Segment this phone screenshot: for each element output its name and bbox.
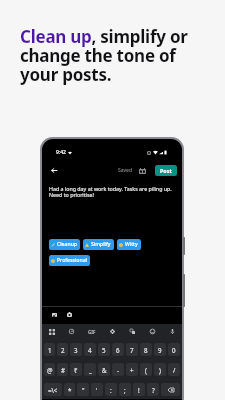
staticText: : xyxy=(110,386,112,394)
button[interactable]: 6 xyxy=(112,343,124,356)
button[interactable]: 5 xyxy=(98,343,110,356)
staticText: ! xyxy=(138,386,140,394)
button[interactable]: 2 xyxy=(57,343,68,356)
button[interactable]: ' xyxy=(91,383,103,396)
staticText: 5 xyxy=(102,346,106,354)
staticText: ; xyxy=(124,386,126,394)
button[interactable]: Keyboard tool 1 xyxy=(67,327,76,336)
staticText: ? xyxy=(152,386,155,394)
staticText: Had a long day at work today. Tasks are … xyxy=(49,185,172,198)
button[interactable]: ) xyxy=(154,363,166,376)
staticText: - xyxy=(117,366,119,374)
staticText: ₹ xyxy=(74,366,78,374)
button[interactable]: _ xyxy=(84,363,96,376)
button[interactable]: Keyboard tool 5 xyxy=(148,327,157,336)
button[interactable]: ₹ xyxy=(70,363,82,376)
button[interactable]: ; xyxy=(119,383,131,396)
staticText: & xyxy=(102,366,107,374)
button[interactable]: * xyxy=(64,383,75,396)
staticText: 7 xyxy=(130,346,134,354)
button[interactable]: Add image xyxy=(50,310,59,319)
staticText: 2 xyxy=(61,346,65,354)
staticText: Post xyxy=(160,167,172,174)
staticText: 9:42 xyxy=(56,149,66,156)
button[interactable]: ! xyxy=(133,383,145,396)
staticText: 8 xyxy=(144,346,148,354)
staticText: 6 xyxy=(116,346,120,354)
button[interactable]: 9 xyxy=(154,343,166,356)
staticText: GIF xyxy=(88,329,96,335)
staticText: " xyxy=(82,386,85,394)
staticText: 9 xyxy=(158,346,162,354)
staticText: Cleanup xyxy=(57,241,77,248)
button[interactable]: 3 xyxy=(70,343,82,356)
button[interactable]: Cleanup xyxy=(49,239,80,250)
button[interactable] xyxy=(161,383,180,396)
button[interactable]: Keyboard tool 2 xyxy=(87,327,96,336)
staticText: / xyxy=(173,366,176,374)
button[interactable]: @ xyxy=(44,363,55,376)
button[interactable]: Back xyxy=(48,164,60,176)
button[interactable]: / xyxy=(168,363,180,376)
button[interactable]: : xyxy=(105,383,117,396)
button[interactable]: 4 xyxy=(84,343,96,356)
staticText: _ xyxy=(89,366,92,374)
button[interactable]: ? xyxy=(147,383,159,396)
button[interactable]: Professional xyxy=(49,255,90,266)
staticText: # xyxy=(61,366,65,374)
staticText: Witty xyxy=(125,241,138,248)
button[interactable]: Post xyxy=(155,165,177,176)
staticText: + xyxy=(130,366,134,374)
button[interactable]: 7 xyxy=(126,343,138,356)
staticText: Clean up, simplify or change the tone of… xyxy=(20,25,188,86)
button[interactable]: Schedule xyxy=(137,165,148,176)
staticText: 0 xyxy=(172,346,176,354)
button[interactable]: ( xyxy=(140,363,152,376)
button[interactable]: " xyxy=(77,383,89,396)
staticText: * xyxy=(68,386,72,394)
button[interactable]: Simplify xyxy=(83,239,114,250)
staticText: @ xyxy=(47,366,53,374)
button[interactable]: Camera xyxy=(65,310,74,319)
staticText: ( xyxy=(145,366,147,374)
button[interactable]: # xyxy=(57,363,68,376)
button[interactable]: - xyxy=(112,363,124,376)
staticText: 3 xyxy=(74,346,78,354)
button[interactable]: 1 xyxy=(44,343,55,356)
staticText: ) xyxy=(159,366,161,374)
staticText: ' xyxy=(96,386,98,394)
button[interactable]: Keyboard tool 0 xyxy=(47,327,56,336)
button[interactable]: Witty xyxy=(117,239,141,250)
button[interactable]: Keyboard tool 4 xyxy=(128,327,137,336)
button[interactable]: Keyboard tool 6 xyxy=(168,327,177,336)
staticText: =\< xyxy=(48,386,58,394)
button[interactable]: =\< xyxy=(44,383,62,396)
button[interactable]: 8 xyxy=(140,343,152,356)
staticText: 4 xyxy=(88,346,92,354)
button[interactable]: Keyboard tool 3 xyxy=(108,327,117,336)
button[interactable]: 0 xyxy=(168,343,180,356)
staticText: Simplify xyxy=(91,241,111,248)
button[interactable]: & xyxy=(98,363,110,376)
staticText: Saved xyxy=(118,167,132,174)
staticText: Professional xyxy=(57,257,87,264)
staticText: 1 xyxy=(48,346,52,354)
button[interactable]: + xyxy=(126,363,138,376)
